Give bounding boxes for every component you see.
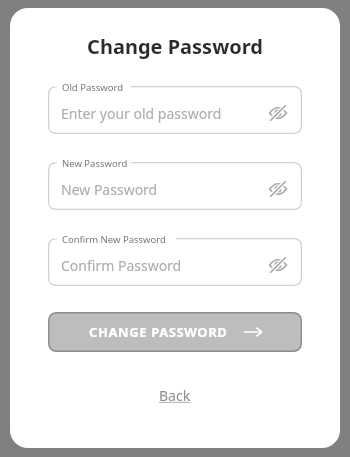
button[interactable]: New Password [48, 162, 302, 210]
staticText: CHANGE PASSWORD [89, 323, 228, 341]
staticText: New Password [61, 180, 158, 199]
staticText: Old Password [62, 81, 124, 94]
button[interactable]: CHANGE PASSWORD [48, 312, 302, 352]
staticText: Confirm Password [61, 256, 182, 275]
button[interactable]: Toggle password visibility [266, 101, 290, 125]
staticText: New Password [62, 157, 128, 170]
staticText: Back [159, 386, 191, 405]
staticText: Confirm New Password [62, 233, 166, 246]
button[interactable]: Toggle password visibility [266, 177, 290, 201]
button[interactable]: Confirm New Password [48, 238, 302, 286]
button[interactable]: Old Password [48, 86, 302, 134]
staticText: Enter your old password [61, 104, 222, 123]
button[interactable]: Back [147, 382, 203, 409]
staticText: Change Password [87, 33, 263, 60]
button[interactable]: Toggle password visibility [266, 253, 290, 277]
